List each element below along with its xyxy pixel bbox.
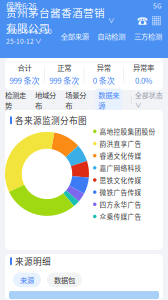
button[interactable]: 检测走势: [5, 89, 26, 111]
staticText: 傍晚6:26: [6, 0, 36, 11]
staticText: 数据来源: [98, 89, 119, 111]
staticText: 正常: [57, 62, 71, 72]
staticText: 贵州茅台酱香酒营销有限公司: [6, 5, 105, 35]
staticText: 来源明细: [15, 255, 51, 267]
staticText: 微铁广告传媒: [99, 187, 141, 197]
staticText: 高地控股集团股份: [99, 126, 155, 136]
staticText: 999 条次: [9, 74, 39, 86]
staticText: 0.0%: [135, 74, 152, 86]
staticText: 全部状态 ∨: [135, 90, 163, 110]
staticText: 四方永华广告: [99, 199, 141, 209]
staticText: 韵洪直享广告: [99, 139, 141, 148]
staticText: ☎: [137, 12, 148, 28]
button[interactable]: Support: [137, 12, 148, 28]
staticText: ∨: [108, 15, 115, 25]
button[interactable]: 自动检测: [97, 31, 125, 41]
staticText: 999 条次: [49, 74, 79, 86]
button[interactable]: 地域分布: [35, 89, 56, 111]
staticText: 众乘传媒广告: [99, 212, 141, 221]
staticText: 合计: [17, 62, 31, 72]
staticText: 异常: [97, 62, 111, 72]
button[interactable]: 数据来源: [95, 88, 122, 112]
button[interactable]: 数据包: [47, 272, 82, 287]
staticText: 嘉广网络科技: [99, 163, 141, 173]
button[interactable]: 全部状态 ∨: [132, 90, 163, 110]
button[interactable]: 三方检测: [134, 31, 162, 41]
staticText: 自动检测: [97, 31, 125, 41]
button[interactable]: 2025-04-12-2025-10-12 ∨: [6, 26, 52, 46]
staticText: ▦: [151, 12, 162, 28]
staticText: 数据包: [54, 274, 75, 285]
staticText: 三方检测: [134, 31, 162, 41]
staticText: 睿通文化传媒: [99, 151, 141, 161]
button[interactable]: 场景分布: [65, 89, 86, 111]
staticText: 2025-04-12-2025-10-12 ∨: [6, 26, 52, 46]
staticText: 地域分布: [35, 89, 56, 111]
staticText: 异常率: [133, 62, 154, 72]
staticText: 来源: [20, 274, 34, 285]
staticText: 检测走势: [5, 89, 26, 111]
staticText: 场景分布: [65, 89, 86, 111]
staticText: 全部来源: [61, 31, 89, 41]
button[interactable]: 全部来源: [61, 31, 89, 41]
staticText: 0 条次: [93, 74, 115, 86]
staticText: 各来源监测分布图: [15, 114, 87, 126]
staticText: 思铁文化传媒: [99, 175, 141, 185]
button[interactable]: 来源: [13, 272, 41, 287]
button[interactable]: Apps: [151, 12, 162, 28]
staticText: 5G: [153, 1, 162, 10]
